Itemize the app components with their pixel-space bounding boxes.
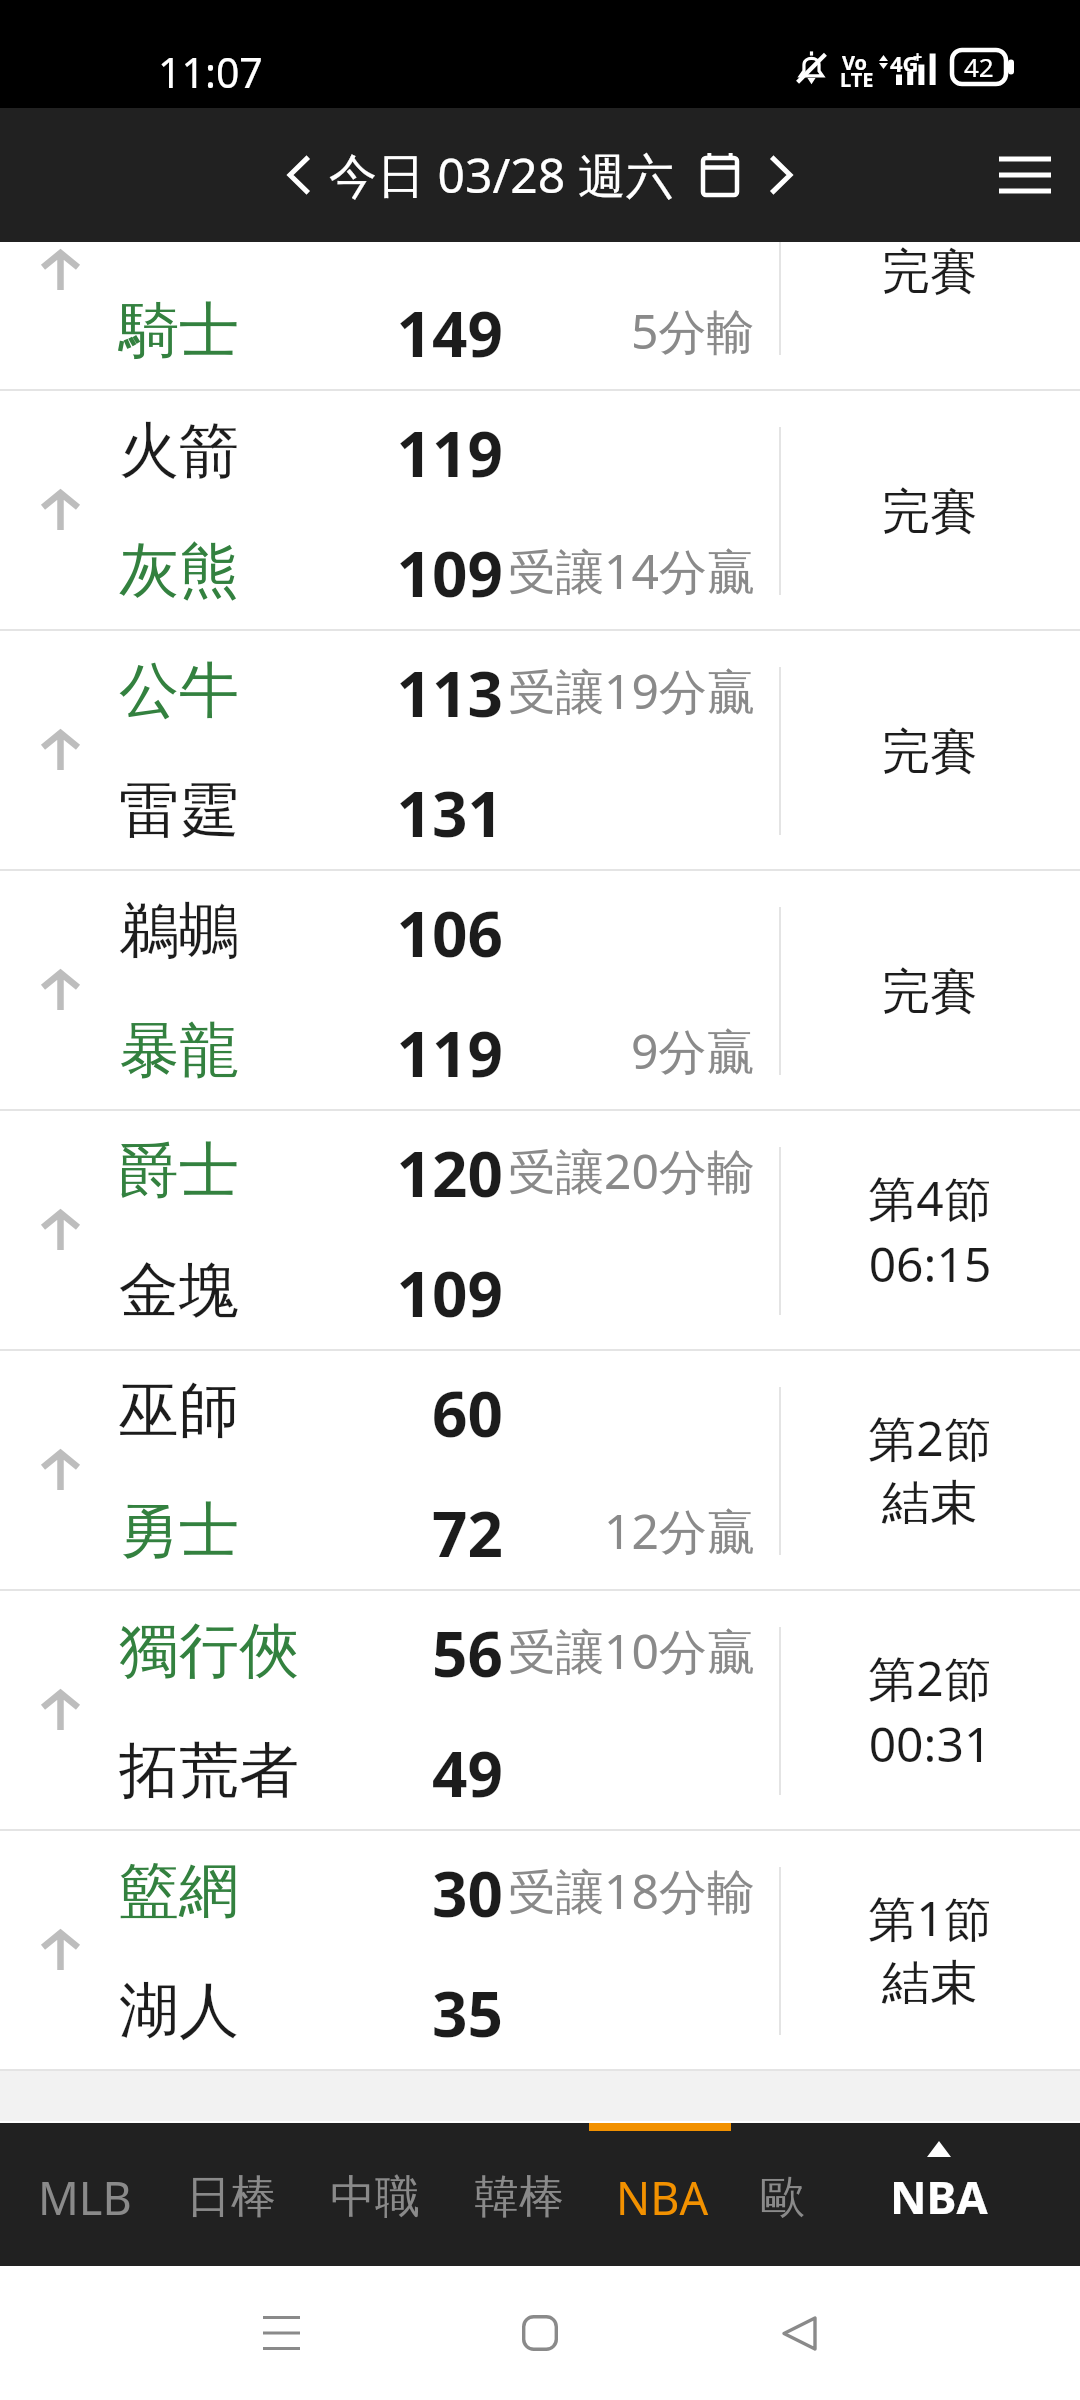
staticText: 第2節 [780,1645,1080,1711]
button[interactable]: 日棒 [161,2128,301,2266]
staticText: 106 [119,891,503,971]
staticText: 完賽 [780,242,1080,302]
staticText: 受讓14分贏 [508,538,755,604]
staticText: 60 [119,1371,503,1451]
staticText: 第1節 [780,1885,1080,1951]
staticText: 結束 [780,1473,1080,1533]
button[interactable]: Menu [970,108,1080,242]
staticText: 勇士 [119,1493,239,1569]
staticText: + [913,46,923,68]
button[interactable]: 火箭 [0,391,1080,631]
staticText: MLB [38,2167,132,2228]
staticText: 拓荒者 [119,1733,299,1809]
button[interactable]: 中職 [305,2128,445,2266]
staticText: 今日 03/28 週六 [329,142,674,208]
staticText: 鵜鶘 [119,893,239,969]
staticText: 騎士 [119,293,239,369]
button[interactable]: 鵜鶘 [0,871,1080,1111]
staticText: 日棒 [186,2169,276,2226]
staticText: 9分贏 [631,1018,755,1084]
staticText: 金塊 [119,1253,239,1329]
staticText: 109 [119,531,503,611]
staticText: 籃網 [119,1853,239,1929]
staticText: LTE [840,66,874,93]
staticText: 湖人 [119,1973,239,2049]
staticText: 35 [119,1971,503,2051]
button[interactable]: Back [754,2288,844,2378]
button[interactable]: Recents [236,2288,326,2378]
staticText: 暴龍 [119,1013,239,1089]
staticText: 韓棒 [474,2169,564,2226]
staticText: 完賽 [780,722,1080,782]
button[interactable]: 公鹿 [0,242,1080,391]
staticText: 公牛 [119,653,239,729]
staticText: 第4節 [780,1165,1080,1231]
staticText: 中職 [330,2169,420,2226]
staticText: 119 [119,1011,503,1091]
staticText: 5分輸 [631,298,755,364]
button[interactable]: NBA [839,2123,1039,2266]
staticText: 第2節 [780,1405,1080,1471]
staticText: 受讓20分輸 [508,1138,755,1204]
staticText: 完賽 [780,962,1080,1022]
staticText: 受讓19分贏 [508,658,755,724]
staticText: 4G [890,48,919,78]
staticText: 獨行俠 [119,1613,299,1689]
button[interactable]: MLB [15,2128,155,2266]
staticText: 30 [119,1851,503,1931]
staticText: 灰熊 [119,533,239,609]
staticText: 49 [119,1731,503,1811]
button[interactable]: 獨行俠 [0,1591,1080,1831]
staticText: 歐 [760,2169,805,2226]
staticText: 受讓18分輸 [508,1858,755,1924]
staticText: 113 [119,651,503,731]
button[interactable]: 籃網 [0,1831,1080,2071]
staticText: Vo [842,49,868,76]
button[interactable]: 公牛 [0,631,1080,871]
staticText: 結束 [780,1953,1080,2013]
staticText: 56 [119,1611,503,1691]
staticText: 119 [119,411,503,491]
staticText: 12分贏 [604,1498,755,1564]
button[interactable]: 歐 [712,2128,852,2266]
button[interactable]: 爵士 [0,1111,1080,1351]
button[interactable]: NBA [592,2128,732,2266]
staticText: 巫師 [119,1373,239,1449]
staticText: 72 [119,1491,503,1571]
staticText: 42 [964,49,994,84]
staticText: 火箭 [119,413,239,489]
staticText: 120 [119,1131,503,1211]
staticText: 06:15 [780,1231,1080,1296]
button[interactable]: 巫師 [0,1351,1080,1591]
staticText: 149 [119,291,503,371]
button[interactable]: 今日 03/28 週六 [284,142,796,208]
staticText: 109 [119,1251,503,1331]
staticText: 受讓10分贏 [508,1618,755,1684]
staticText: 爵士 [119,1133,239,1209]
button[interactable]: 韓棒 [449,2128,589,2266]
staticText: 11:07 [158,44,263,100]
button[interactable]: Home [495,2288,585,2378]
staticText: 完賽 [780,482,1080,542]
staticText: NBA [616,2167,709,2228]
staticText: 00:31 [780,1711,1080,1776]
staticText: 131 [119,771,503,851]
staticText: NBA [890,2166,988,2227]
staticText: 雷霆 [119,773,239,849]
